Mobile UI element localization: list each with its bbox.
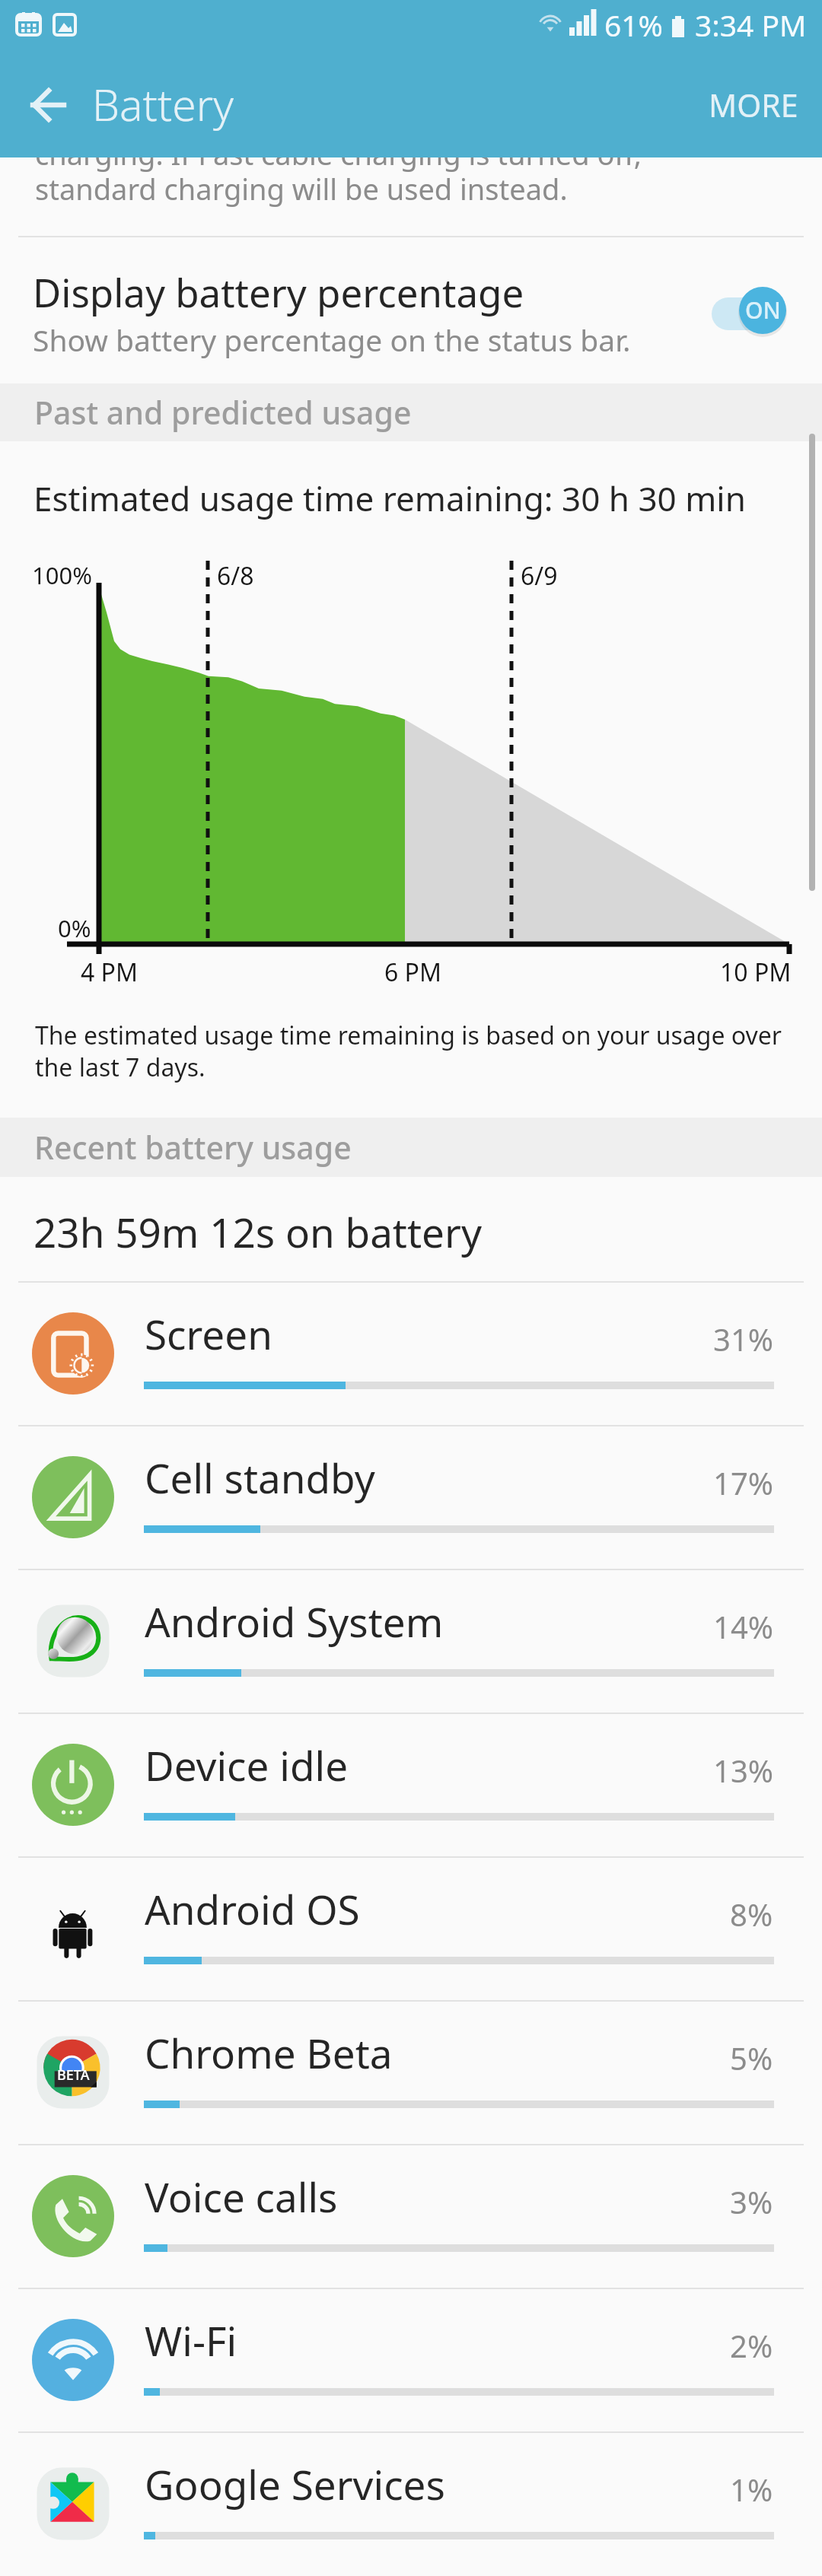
staticText: 6 PM: [384, 956, 442, 989]
staticText: Device idle: [145, 1738, 349, 1792]
staticText: 17%: [713, 1462, 773, 1503]
staticText: charging. If Fast cable charging is turn…: [35, 134, 642, 208]
staticText: 61%: [604, 5, 664, 45]
staticText: Android System: [145, 1594, 444, 1649]
button[interactable]: BETA: [0, 2000, 822, 2144]
staticText: 0%: [58, 912, 91, 944]
staticText: Estimated usage time remaining: 30 h 30 …: [33, 475, 746, 521]
staticText: 1%: [730, 2469, 773, 2510]
staticText: 6/8: [217, 559, 254, 593]
staticText: Google Services: [145, 2457, 445, 2511]
button[interactable]: Wi-Fi: [0, 2288, 822, 2431]
staticText: Voice calls: [145, 2169, 338, 2224]
button[interactable]: Cell standby: [0, 1425, 822, 1569]
staticText: Show battery percentage on the status ba…: [33, 320, 631, 360]
staticText: ON: [745, 294, 781, 326]
staticText: Cell standby: [145, 1450, 375, 1505]
button[interactable]: Android System: [0, 1569, 822, 1713]
staticText: 3%: [730, 2181, 773, 2222]
button[interactable]: Android OS: [0, 1856, 822, 2000]
staticText: Battery: [92, 75, 234, 134]
staticText: 5%: [730, 2037, 773, 2078]
staticText: 13%: [713, 1750, 773, 1791]
button[interactable]: Display battery percentage: [0, 237, 822, 383]
staticText: The estimated usage time remaining is ba…: [35, 1019, 807, 1083]
staticText: Screen: [145, 1306, 272, 1361]
staticText: 31%: [713, 1318, 773, 1360]
button[interactable]: Device idle: [0, 1713, 822, 1856]
staticText: Android OS: [145, 1881, 360, 1936]
button[interactable]: Voice calls: [0, 2144, 822, 2288]
staticText: 23h 59m 12s on battery: [33, 1204, 482, 1259]
staticText: Wi-Fi: [145, 2313, 237, 2368]
staticText: 6/9: [521, 559, 558, 593]
staticText: 10 PM: [720, 956, 792, 989]
staticText: Chrome Beta: [145, 2025, 393, 2080]
button[interactable]: MORE: [670, 52, 822, 157]
staticText: Past and predicted usage: [34, 391, 412, 434]
staticText: 100%: [32, 559, 92, 591]
staticText: Recent battery usage: [34, 1126, 352, 1169]
button[interactable]: Navigate up: [0, 52, 96, 157]
staticText: 4 PM: [81, 956, 139, 989]
staticText: Display battery percentage: [33, 266, 524, 318]
button[interactable]: Google Services: [0, 2431, 822, 2575]
button[interactable]: Screen: [0, 1281, 822, 1425]
staticText: 3:34 PM: [695, 5, 807, 45]
staticText: BETA: [57, 2066, 90, 2085]
staticText: 2%: [730, 2325, 773, 2366]
staticText: 14%: [713, 1606, 773, 1647]
staticText: MORE: [709, 84, 798, 126]
staticText: 8%: [730, 1894, 773, 1935]
